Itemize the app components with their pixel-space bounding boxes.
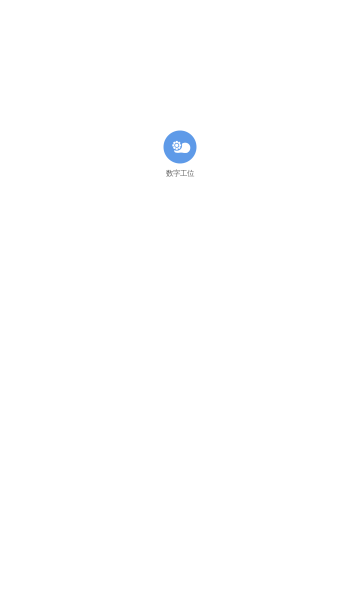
staticText: 数字工位 bbox=[166, 168, 194, 178]
button[interactable]: 数字工位 bbox=[145, 130, 215, 178]
